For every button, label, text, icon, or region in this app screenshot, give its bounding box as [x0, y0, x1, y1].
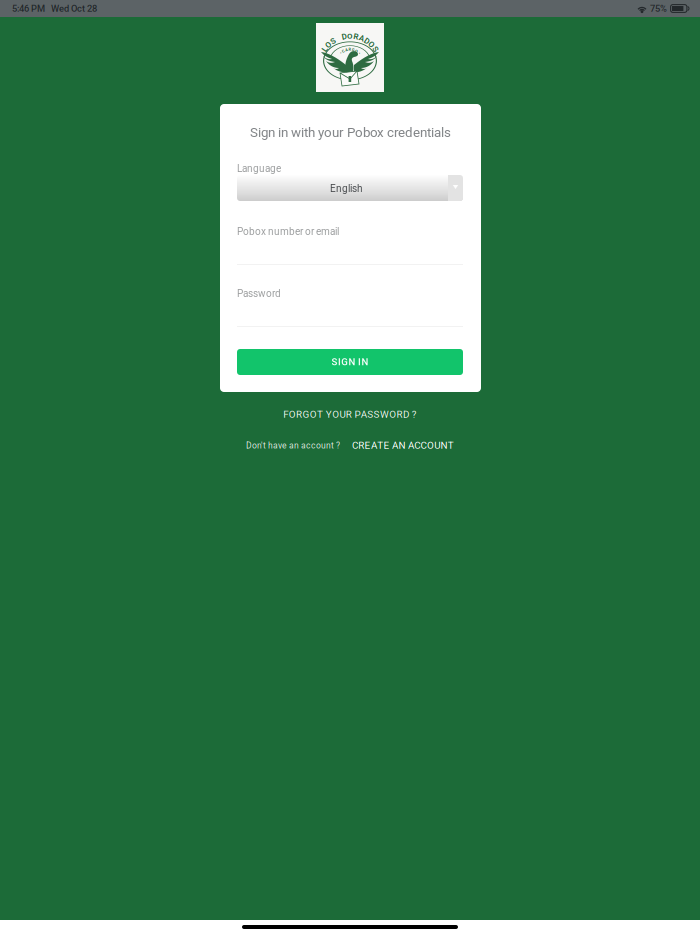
button[interactable]: SIGN IN	[237, 349, 463, 375]
staticText	[345, 48, 346, 53]
staticText: D	[342, 32, 347, 41]
staticText: A	[359, 34, 364, 43]
button[interactable]: Language: English	[237, 175, 463, 201]
staticText: S	[373, 44, 378, 54]
staticText: S	[331, 36, 336, 46]
staticText: A	[345, 48, 348, 52]
staticText: G	[352, 48, 355, 52]
staticText: 5:46 PM	[12, 3, 45, 14]
staticText: •	[359, 51, 360, 55]
staticText: O	[347, 31, 353, 41]
button[interactable]: Password	[237, 288, 463, 327]
staticText: FORGOT YOUR PASSWORD ?	[283, 409, 417, 420]
staticText: Sign in with your Pobox credentials	[250, 125, 451, 140]
staticText	[351, 47, 352, 52]
staticText	[342, 50, 343, 54]
staticText: Wed Oct 28	[45, 3, 97, 14]
staticText: R	[348, 47, 351, 52]
staticText: R	[353, 32, 358, 41]
staticText: SIGN IN	[332, 356, 368, 368]
staticText	[348, 47, 349, 52]
staticText: D	[364, 36, 369, 46]
staticText: Pobox number or email	[237, 226, 339, 237]
staticText	[354, 48, 355, 53]
staticText: O	[355, 49, 358, 53]
staticText: •	[340, 51, 341, 55]
staticText: English	[330, 183, 363, 194]
staticText: L	[323, 44, 327, 54]
staticText: Don't have an account ?	[246, 440, 340, 451]
button[interactable]: FORGOT YOUR PASSWORD ?	[0, 409, 700, 420]
staticText: Password	[237, 288, 281, 299]
staticText: CREATE AN ACCOUNT	[352, 440, 454, 451]
staticText: O	[325, 40, 331, 49]
staticText: Language	[237, 163, 281, 174]
button[interactable]: Pobox number or email	[237, 226, 463, 265]
staticText: C	[342, 49, 345, 53]
staticText: 75%	[648, 3, 667, 14]
staticText: O	[368, 40, 374, 49]
staticText	[357, 50, 358, 54]
button[interactable]: CREATE AN ACCOUNT	[352, 440, 482, 451]
